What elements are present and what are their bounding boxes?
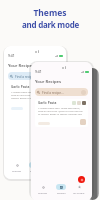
staticText: Find a recipe... [42,91,64,95]
button[interactable]: Recipes [29,162,39,172]
staticText: My Profile [73,191,85,194]
button[interactable]: Settings [38,184,48,194]
staticText: Themes [33,7,67,19]
staticText: Garlic Pasta [38,101,57,105]
staticText: Garlic Pasta [11,85,30,89]
staticText: Your Recipes [35,79,62,85]
button[interactable]: Garlic Pasta [35,99,88,127]
button[interactable]: Find a recipe... [35,88,88,96]
button[interactable]: Add recipe [78,176,85,183]
staticText: Your Recipes [8,63,35,69]
button[interactable]: Find a recipe... [8,72,62,80]
button[interactable]: Garlic Pasta [8,83,62,112]
button[interactable]: Recipes [56,184,66,194]
staticText: A simple pasta dish. Made with garlic, o… [11,90,59,99]
staticText: A simple pasta dish. Made with garlic, o… [38,106,85,115]
staticText: Find a recipe... [15,75,37,79]
staticText: Settings [12,169,22,172]
staticText: 9:41 [8,53,15,58]
staticText: Settings [38,191,48,194]
staticText: Recipes [57,191,66,194]
button[interactable]: My Profile [73,184,85,194]
staticText: Recipes [30,169,39,172]
staticText: and dark mode [22,19,79,30]
staticText: 9:41 [35,69,42,74]
button[interactable]: Settings [12,162,22,172]
